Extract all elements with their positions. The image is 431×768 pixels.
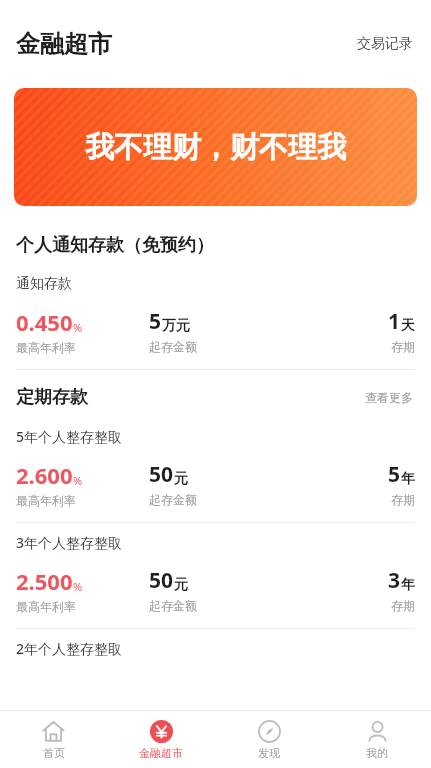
button[interactable]: 查看更多 [363, 386, 415, 409]
staticText: 起存金额 [149, 598, 197, 613]
staticText: 3年个人整存整取 [16, 533, 123, 552]
staticText: 1 [388, 307, 401, 336]
staticText: 5年个人整存整取 [16, 427, 123, 446]
staticText: 天 [401, 317, 415, 335]
staticText: 年 [401, 470, 415, 488]
staticText: % [73, 320, 83, 335]
staticText: 万元 [162, 317, 190, 335]
staticText: 元 [174, 576, 188, 594]
staticText: 个人通知存款（免预约） [16, 234, 214, 257]
staticText: 起存金额 [149, 492, 197, 507]
staticText: 我的 [366, 746, 388, 760]
button[interactable]: 交易记录 [355, 29, 415, 59]
button[interactable]: 通知存款 [0, 275, 431, 369]
staticText: 5 [149, 307, 162, 336]
staticText: % [73, 473, 83, 488]
button[interactable]: 3年个人整存整取 [0, 533, 431, 628]
staticText: 通知存款 [16, 275, 72, 293]
staticText: 年 [401, 576, 415, 594]
staticText: 首页 [43, 746, 65, 760]
staticText: 存期 [391, 598, 415, 613]
button[interactable]: 2年个人整存整取 [0, 639, 431, 658]
button[interactable]: 发现 [215, 711, 323, 768]
staticText: 起存金额 [149, 339, 197, 354]
staticText: 查看更多 [365, 390, 413, 405]
staticText: 金融超市 [139, 746, 183, 760]
staticText: 我不理财，财不理我 [85, 129, 346, 166]
button[interactable]: 5年个人整存整取 [0, 427, 431, 522]
staticText: 最高年利率 [16, 599, 76, 614]
staticText: 发现 [258, 746, 280, 760]
button[interactable]: 首页 [0, 711, 107, 768]
staticText: 金融超市 [16, 29, 112, 59]
staticText: 最高年利率 [16, 493, 76, 508]
staticText: 2年个人整存整取 [16, 639, 123, 658]
staticText: 元 [174, 470, 188, 488]
staticText: 0.450 [16, 307, 73, 337]
button[interactable]: 金融超市 [107, 711, 215, 768]
staticText: 存期 [391, 339, 415, 354]
staticText: 存期 [391, 492, 415, 507]
staticText: % [73, 579, 83, 594]
staticText: 定期存款 [16, 386, 88, 409]
button[interactable]: 我的 [323, 711, 431, 768]
staticText: 2.600 [16, 460, 73, 490]
staticText: 5 [388, 460, 401, 489]
staticText: 50 [149, 566, 174, 595]
button[interactable]: 我不理财，财不理我 [14, 88, 417, 206]
staticText: 3 [388, 566, 401, 595]
staticText: 最高年利率 [16, 340, 76, 355]
staticText: 交易记录 [357, 35, 413, 53]
staticText: 50 [149, 460, 174, 489]
staticText: 2.500 [16, 566, 73, 596]
